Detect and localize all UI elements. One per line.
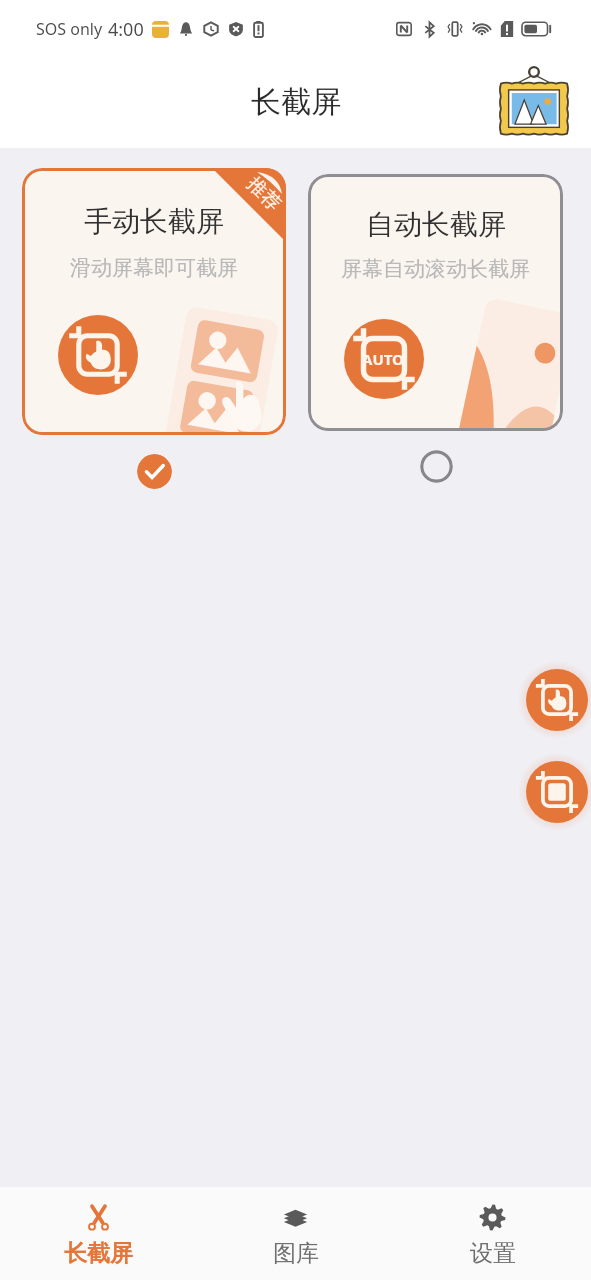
- staticText: 屏幕自动滚动长截屏: [341, 256, 530, 282]
- staticText: 4:00: [108, 17, 144, 42]
- staticText: 推荐: [242, 172, 286, 216]
- button[interactable]: 长截屏: [0, 1187, 197, 1280]
- staticText: 设置: [470, 1239, 516, 1268]
- staticText: 自动长截屏: [366, 207, 506, 242]
- button[interactable]: 设置: [394, 1187, 591, 1280]
- button[interactable]: 图库: [197, 1187, 394, 1280]
- staticText: 长截屏: [64, 1239, 133, 1268]
- button[interactable]: Manual long screenshot: [526, 669, 588, 731]
- staticText: SOS only: [36, 18, 103, 40]
- button[interactable]: AUTO: [308, 174, 563, 431]
- staticText: 图库: [273, 1239, 319, 1268]
- staticText: 滑动屏幕即可截屏: [70, 255, 238, 281]
- staticText: 手动长截屏: [84, 204, 224, 239]
- button[interactable]: 推荐: [22, 168, 286, 435]
- button[interactable]: Select auto: [420, 450, 453, 483]
- button[interactable]: Auto long screenshot: [526, 761, 588, 823]
- button[interactable]: Manual selected: [137, 454, 172, 489]
- button[interactable]: Gallery: [495, 63, 573, 141]
- staticText: AUTO: [362, 349, 404, 369]
- staticText: 长截屏: [251, 83, 341, 121]
